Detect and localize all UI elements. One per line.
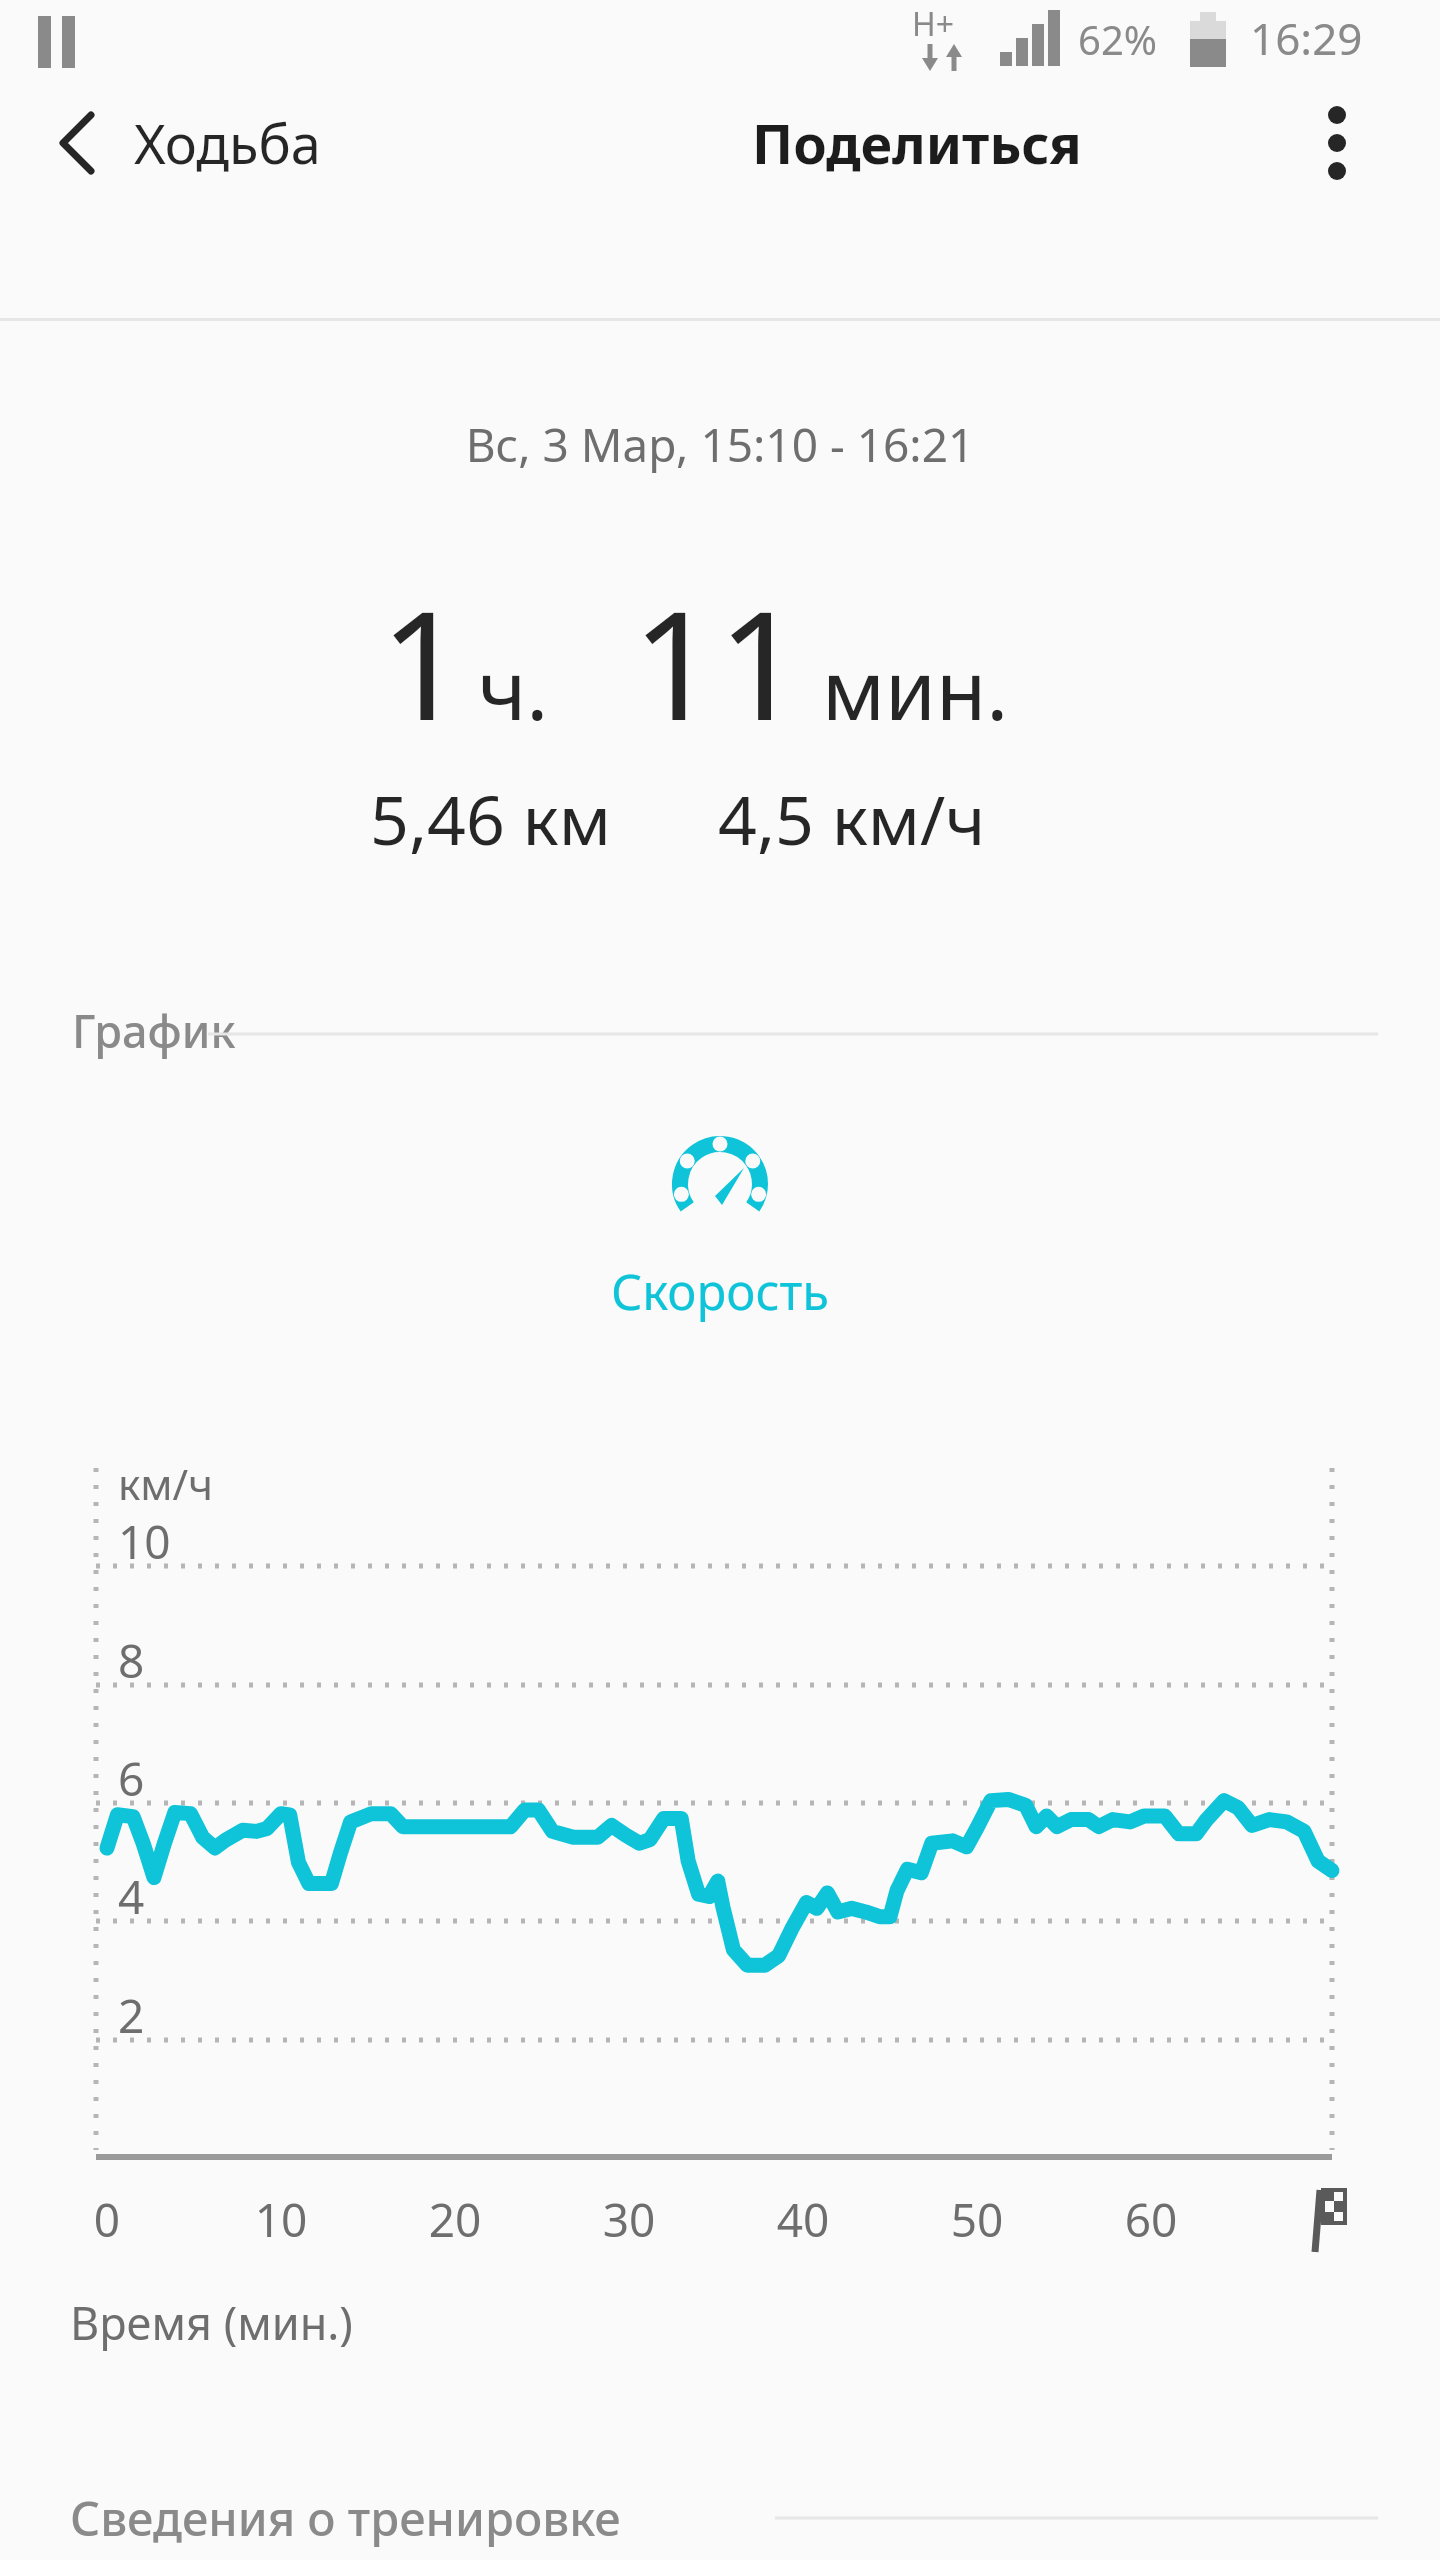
staticText: Ходьба — [134, 106, 321, 180]
button[interactable]: Speed — [600, 1128, 840, 1328]
staticText: Вс, 3 Мар, 15:10 - 16:21 — [0, 413, 1440, 476]
staticText: 30 — [569, 2188, 689, 2251]
staticText: 62% — [1078, 12, 1157, 66]
staticText: Поделиться — [752, 106, 1082, 180]
staticText: H+ — [912, 2, 955, 46]
button[interactable]: Ходьба — [134, 88, 454, 198]
staticText: 5,46 км — [370, 772, 611, 865]
button[interactable]: Back — [22, 88, 132, 198]
staticText: 10 — [221, 2188, 341, 2251]
staticText: 4,5 км/ч — [718, 772, 986, 865]
staticText: 4 — [118, 1865, 145, 1928]
staticText: 50 — [917, 2188, 1037, 2251]
staticText: 11 — [632, 560, 804, 764]
staticText: 16:29 — [1250, 8, 1363, 68]
staticText: 10 — [118, 1510, 171, 1573]
staticText: 1 — [380, 560, 466, 764]
staticText: км/ч — [118, 1455, 213, 1512]
staticText: мин. — [822, 632, 1009, 744]
staticText: 20 — [395, 2188, 515, 2251]
staticText: 6 — [118, 1747, 145, 1810]
staticText: 40 — [743, 2188, 863, 2251]
staticText: 0 — [47, 2188, 167, 2251]
button[interactable]: More options — [1282, 88, 1392, 198]
staticText: 60 — [1091, 2188, 1211, 2251]
staticText: 8 — [118, 1629, 145, 1692]
staticText: ч. — [478, 632, 549, 744]
button[interactable]: Поделиться — [752, 88, 1082, 198]
staticText: Время (мин.) — [70, 2292, 353, 2353]
staticText: Скорость — [0, 1258, 1440, 1325]
staticText: Сведения о тренировке — [70, 2486, 621, 2550]
staticText: 2 — [118, 1984, 145, 2047]
staticText: График — [72, 1000, 236, 1061]
